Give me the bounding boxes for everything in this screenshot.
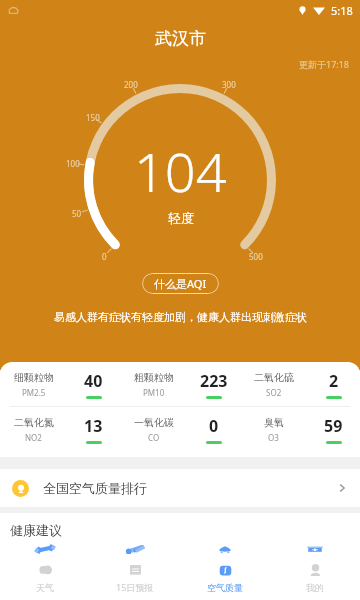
button[interactable]: 口罩 [180, 544, 270, 554]
staticText: PM2.5 [22, 387, 46, 398]
staticText: 一氧化碳 [134, 416, 174, 429]
staticText: 5:18 [331, 3, 353, 18]
button[interactable]: 医疗 [270, 544, 360, 554]
button[interactable]: 全国空气质量排行 [0, 469, 360, 507]
staticText: PM10 [143, 387, 165, 398]
button[interactable]: 二氧化硫 [240, 362, 360, 406]
button[interactable]: 臭氧 [240, 407, 360, 451]
staticText: 59 [324, 415, 343, 437]
staticText: CO [148, 432, 160, 443]
staticText: 什么是AQI [154, 276, 207, 291]
staticText: 天气 [36, 582, 54, 593]
staticText: 二氧化硫 [254, 371, 294, 384]
staticText: 二氧化氮 [14, 416, 54, 429]
staticText: O3 [268, 432, 279, 443]
staticText: 200 [124, 79, 138, 90]
staticText: 更新于17:18 [299, 58, 350, 70]
button[interactable]: 细颗粒物 [0, 362, 120, 406]
staticText: 我的 [306, 582, 324, 593]
staticText: 健康建议 [10, 522, 62, 538]
button[interactable]: 15日预报 [90, 554, 180, 600]
button[interactable]: 什么是AQI [142, 273, 219, 294]
staticText: 武汉市 [155, 28, 206, 49]
button[interactable]: 空气质量 [180, 554, 270, 600]
button[interactable]: 运动 [0, 544, 90, 554]
staticText: 全国空气质量排行 [43, 480, 147, 496]
button[interactable]: 粗颗粒物 [120, 362, 240, 406]
staticText: 0 [209, 415, 219, 437]
button[interactable]: 一氧化碳 [120, 407, 240, 451]
staticText: 150 [86, 112, 100, 123]
staticText: 500 [249, 251, 263, 262]
staticText: 2 [329, 370, 339, 392]
staticText: 104 [134, 134, 227, 208]
staticText: 空气质量 [207, 582, 243, 593]
staticText: 50 [72, 208, 82, 219]
staticText: 0 [102, 251, 107, 262]
staticText: 细颗粒物 [14, 371, 54, 384]
staticText: 13 [84, 415, 103, 437]
staticText: 轻度 [168, 210, 194, 226]
staticText: 40 [84, 370, 103, 392]
staticText: 15日预报 [116, 581, 154, 593]
staticText: 粗颗粒物 [134, 371, 174, 384]
button[interactable]: 二氧化氮 [0, 407, 120, 451]
staticText: 223 [200, 370, 228, 392]
staticText: SO2 [266, 387, 282, 398]
staticText: NO2 [25, 432, 42, 443]
button[interactable]: 我的 [270, 554, 360, 600]
staticText: 100 [66, 158, 80, 169]
button[interactable]: 羽毛球 [90, 544, 180, 554]
staticText: 300 [222, 79, 236, 90]
staticText: 易感人群有症状有轻度加剧，健康人群出现刺激症状 [54, 310, 307, 324]
staticText: 臭氧 [264, 416, 284, 429]
button[interactable]: 天气 [0, 554, 90, 600]
